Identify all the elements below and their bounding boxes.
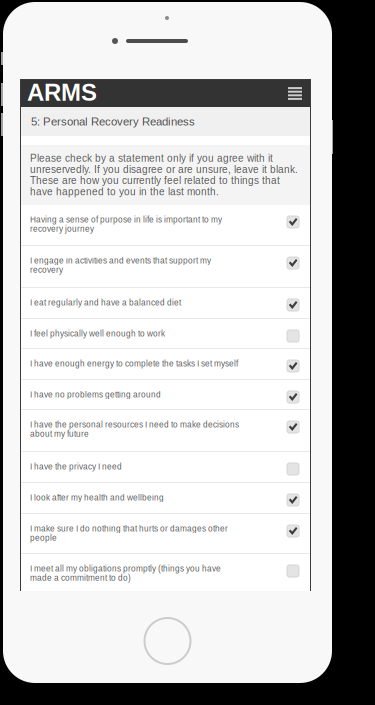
staticText: I have no problems getting around [30, 390, 161, 399]
staticText: Please check by a statement only if you … [30, 153, 298, 197]
staticText: I have enough energy to complete the tas… [30, 359, 238, 368]
button[interactable]: I have enough energy to complete the tas… [21, 349, 310, 379]
button[interactable]: I have the personal resources I need to … [21, 410, 310, 451]
button[interactable]: I make sure I do nothing that hurts or d… [21, 514, 310, 553]
staticText: I look after my health and wellbeing [30, 493, 164, 502]
staticText: 5: Personal Recovery Readiness [31, 115, 195, 128]
staticText: I make sure I do nothing that hurts or d… [30, 524, 228, 542]
button[interactable]: I feel physically well enough to work [21, 319, 310, 348]
button[interactable]: Having a sense of purpose in life is imp… [21, 205, 310, 245]
button[interactable]: I engage in activities and events that s… [21, 246, 310, 287]
staticText: I have the personal resources I need to … [30, 420, 239, 438]
button[interactable]: I have the privacy I need [21, 452, 310, 482]
button[interactable]: Menu [283, 82, 307, 105]
button[interactable]: I eat regularly and have a balanced diet [21, 288, 310, 318]
staticText: I feel physically well enough to work [30, 329, 165, 338]
staticText: I have the privacy I need [30, 462, 122, 471]
staticText: Having a sense of purpose in life is imp… [30, 215, 222, 233]
staticText: I eat regularly and have a balanced diet [30, 298, 181, 307]
staticText: I engage in activities and events that s… [30, 256, 211, 274]
button[interactable]: I meet all my obligations promptly (thin… [21, 554, 310, 591]
staticText: I meet all my obligations promptly (thin… [30, 564, 221, 582]
button[interactable]: I look after my health and wellbeing [21, 483, 310, 513]
staticText: ARMS [27, 79, 97, 106]
button[interactable]: I have no problems getting around [21, 380, 310, 409]
